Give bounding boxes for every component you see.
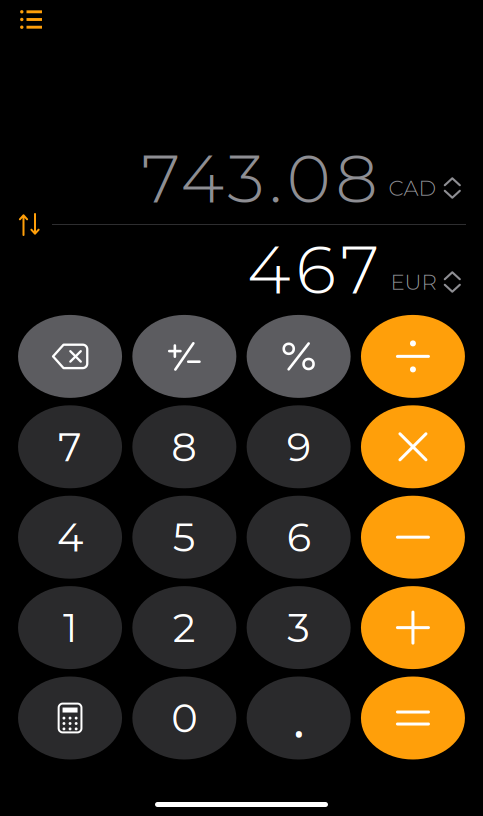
button[interactable]: EUR <box>380 263 461 295</box>
staticText: CAD <box>389 175 437 201</box>
button[interactable]: 3 <box>247 586 351 669</box>
staticText: 4 <box>57 513 83 562</box>
staticText: 0 <box>171 694 197 742</box>
button[interactable]: Subtract <box>361 496 465 579</box>
button[interactable]: Decimal point <box>247 676 351 759</box>
button[interactable]: Add <box>361 586 465 669</box>
staticText: 9 <box>287 422 311 471</box>
staticText: 7 <box>58 422 82 471</box>
button[interactable]: Menu <box>0 0 57 43</box>
staticText: EUR <box>391 269 437 295</box>
button[interactable]: Equals <box>361 676 465 759</box>
button[interactable]: Plus minus <box>132 315 236 398</box>
button[interactable]: 0 <box>132 676 236 759</box>
button[interactable]: 7 <box>18 405 122 488</box>
button[interactable]: Calculator <box>18 676 122 759</box>
staticText: 5 <box>173 513 196 562</box>
staticText: 8 <box>171 422 197 471</box>
staticText: 3 <box>287 603 310 652</box>
button[interactable]: 2 <box>132 586 236 669</box>
staticText: 467 <box>247 229 380 310</box>
button[interactable]: Divide <box>361 315 465 398</box>
button[interactable]: Delete <box>18 315 122 398</box>
button[interactable]: 1 <box>18 586 122 669</box>
button[interactable]: 5 <box>132 496 236 579</box>
staticText: 2 <box>173 603 196 652</box>
button[interactable]: 9 <box>247 405 351 488</box>
staticText: 1 <box>63 603 77 652</box>
button[interactable]: Multiply <box>361 405 465 488</box>
staticText: . <box>292 685 305 751</box>
button[interactable]: Swap currencies <box>0 212 52 237</box>
button[interactable]: 6 <box>247 496 351 579</box>
button[interactable]: 4 <box>18 496 122 579</box>
button[interactable]: 8 <box>132 405 236 488</box>
button[interactable]: Percent <box>247 315 351 398</box>
button[interactable]: CAD <box>378 172 461 204</box>
staticText: 743.08 <box>142 138 378 219</box>
staticText: 6 <box>287 513 311 562</box>
